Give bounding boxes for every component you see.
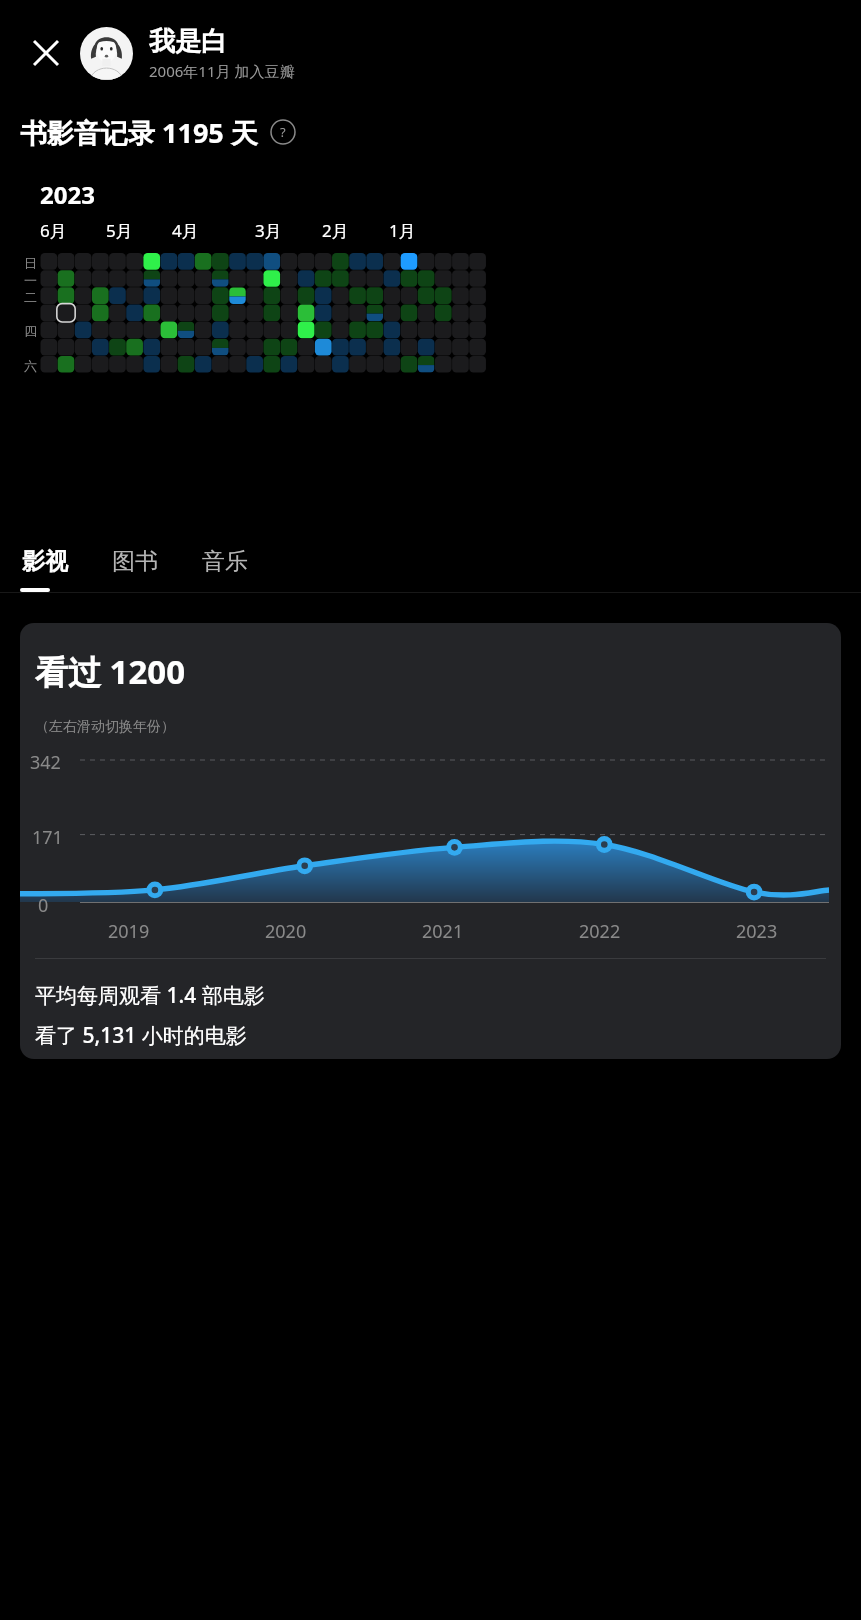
button[interactable]: 音乐 <box>202 547 248 576</box>
staticText: 二 <box>24 289 37 305</box>
button[interactable]: Help <box>268 117 298 147</box>
button[interactable]: Close <box>20 27 72 79</box>
staticText: 音乐 <box>202 547 248 576</box>
staticText: 平均每周观看 1.4 部电影 <box>35 981 265 1010</box>
staticText: 342 <box>30 750 61 775</box>
staticText: 2022 <box>579 919 621 944</box>
staticText: 图书 <box>112 547 158 576</box>
staticText: 2月 <box>322 219 349 242</box>
staticText: （左右滑动切换年份） <box>35 718 175 736</box>
button[interactable]: 影视 <box>22 547 68 576</box>
staticText: 一 <box>24 272 37 288</box>
staticText: 6月 <box>40 219 67 242</box>
staticText: 2019 <box>108 919 150 944</box>
staticText: 看了 5,131 小时的电影 <box>35 1021 247 1050</box>
staticText: 四 <box>24 323 37 339</box>
staticText: 2023 <box>40 178 95 211</box>
staticText: 2021 <box>422 919 464 944</box>
staticText: 171 <box>32 825 63 850</box>
button[interactable]: 看过 1200 <box>20 623 841 1059</box>
staticText: 2023 <box>736 919 778 944</box>
staticText: 4月 <box>172 219 199 242</box>
staticText: 3月 <box>255 219 282 242</box>
staticText: 书影音记录 1195 天 <box>20 114 258 151</box>
button[interactable]: Profile avatar <box>80 27 133 80</box>
staticText: 0 <box>38 893 49 918</box>
staticText: 看过 1200 <box>35 649 186 694</box>
staticText: 六 <box>24 358 37 374</box>
button[interactable]: 图书 <box>112 547 158 576</box>
staticText: 2020 <box>265 919 307 944</box>
staticText: 我是白 <box>149 25 227 58</box>
staticText: 5月 <box>106 219 133 242</box>
staticText: 1月 <box>389 219 416 242</box>
staticText: ? <box>280 123 286 141</box>
staticText: 2006年11月 加入豆瓣 <box>149 61 295 81</box>
staticText: 影视 <box>22 547 68 576</box>
staticText: 日 <box>24 255 37 271</box>
